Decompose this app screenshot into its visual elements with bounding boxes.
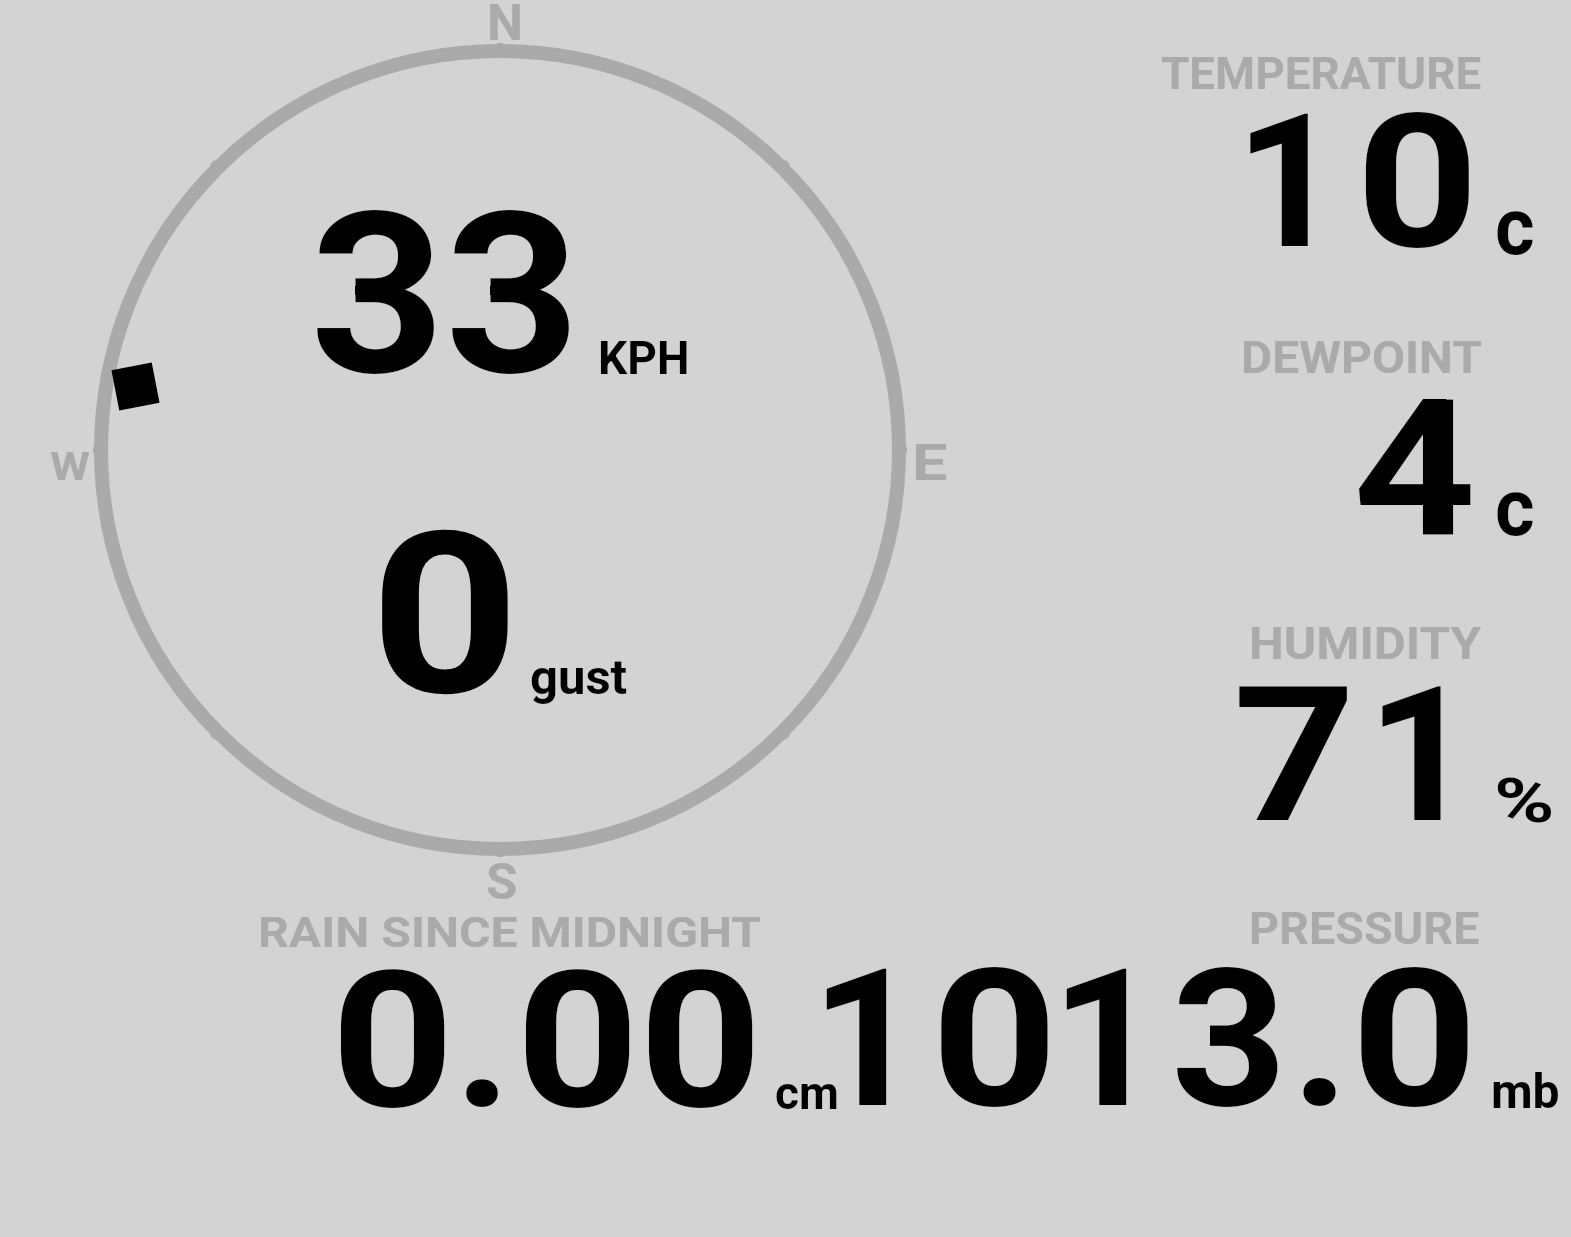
staticText: E [912, 434, 948, 493]
staticText: 1 [1051, 927, 1162, 1152]
staticText: . [454, 930, 512, 1153]
staticText: 0 [331, 930, 455, 1153]
staticText: N [487, 0, 524, 53]
staticText: 1 [811, 927, 922, 1152]
staticText: 0 [639, 930, 763, 1153]
staticText: KPH [598, 331, 690, 385]
staticText: 4 [1353, 358, 1477, 581]
staticText: 3 [310, 163, 446, 427]
staticText: cm [775, 1066, 839, 1120]
staticText: 0 [1356, 73, 1479, 291]
staticText: % [1494, 764, 1555, 837]
staticText: . [1291, 927, 1350, 1152]
staticText: 7 [1233, 646, 1356, 866]
staticText: S [486, 853, 518, 912]
button[interactable]: Humidity 71 percent [1150, 615, 1570, 830]
staticText: 0 [370, 483, 521, 747]
staticText: 0 [516, 930, 640, 1153]
staticText: 1 [1235, 73, 1342, 291]
staticText: gust [530, 649, 628, 706]
button[interactable]: Pressure 1013.0 mb [860, 900, 1570, 1115]
staticText: HUMIDITY [1249, 618, 1482, 670]
button[interactable]: Wind compass, 33 KPH from west north wes… [80, 30, 920, 870]
staticText: 0 [1351, 927, 1479, 1152]
staticText: 0 [931, 927, 1059, 1152]
staticText: W [50, 445, 91, 490]
other: Wind direction marker [111, 362, 160, 411]
staticText: mb [1491, 1063, 1560, 1119]
button[interactable]: Rain since midnight 0.00 cm [250, 900, 850, 1115]
staticText: 3 [1171, 927, 1288, 1152]
staticText: RAIN SINCE MIDNIGHT [258, 907, 762, 957]
staticText: PRESSURE [1249, 903, 1480, 955]
staticText: DEWPOINT [1241, 332, 1483, 384]
staticText: c [1495, 180, 1535, 274]
staticText: 1 [1367, 646, 1475, 866]
staticText: c [1495, 461, 1535, 555]
staticText: TEMPERATURE [1161, 48, 1481, 100]
button[interactable]: Temperature 10 degrees celsius [1150, 40, 1570, 260]
staticText: 3 [445, 163, 581, 427]
button[interactable]: Dewpoint 4 degrees celsius [1150, 330, 1570, 545]
